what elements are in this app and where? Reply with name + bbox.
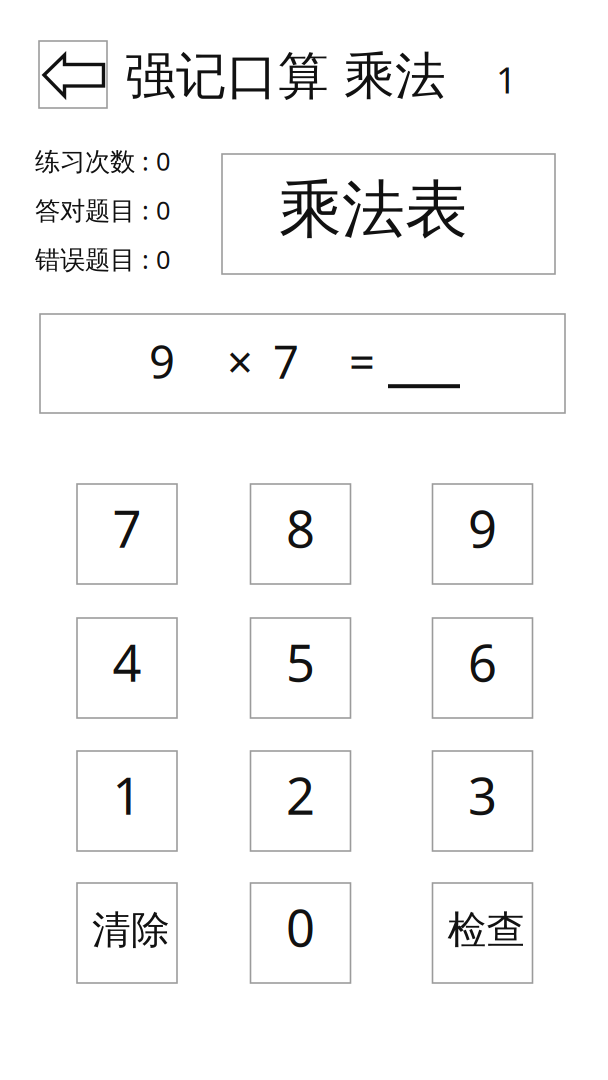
staticText: 7 bbox=[112, 494, 141, 562]
staticText: 答对题目 : 0 bbox=[35, 193, 170, 227]
button[interactable]: 8 bbox=[250, 484, 350, 584]
staticText: 3 bbox=[468, 761, 497, 829]
staticText: 9 bbox=[149, 331, 175, 391]
staticText: 9 bbox=[468, 494, 497, 562]
staticText: 5 bbox=[286, 628, 315, 696]
staticText: × bbox=[227, 331, 253, 391]
button[interactable]: 乘法表 bbox=[222, 154, 555, 274]
button[interactable]: 7 bbox=[77, 484, 177, 584]
button[interactable]: 1 bbox=[77, 751, 177, 851]
staticText: 错误题目 : 0 bbox=[35, 242, 170, 276]
staticText: 1 bbox=[496, 56, 517, 103]
staticText: 强记口算 乘法 bbox=[125, 45, 446, 108]
staticText: 0 bbox=[286, 893, 315, 961]
button[interactable]: 6 bbox=[432, 618, 532, 718]
staticText: 练习次数 : 0 bbox=[35, 144, 170, 178]
button[interactable]: 9 bbox=[432, 484, 532, 584]
button[interactable]: 3 bbox=[432, 751, 532, 851]
button[interactable]: 检查 bbox=[432, 883, 532, 983]
staticText: 6 bbox=[468, 628, 497, 696]
button[interactable]: 2 bbox=[250, 751, 350, 851]
staticText: 乘法表 bbox=[279, 171, 468, 248]
button[interactable]: 4 bbox=[77, 618, 177, 718]
button[interactable]: Back bbox=[39, 41, 107, 108]
button[interactable]: 0 bbox=[250, 883, 350, 983]
staticText: 清除 bbox=[92, 906, 170, 954]
staticText: 7 bbox=[273, 331, 299, 391]
staticText: 检查 bbox=[447, 906, 525, 954]
staticText: 1 bbox=[112, 761, 141, 829]
staticText: 4 bbox=[112, 628, 141, 696]
staticText: = bbox=[349, 331, 375, 391]
button[interactable]: 5 bbox=[250, 618, 350, 718]
staticText: 8 bbox=[286, 494, 315, 562]
staticText: 2 bbox=[286, 761, 315, 829]
button[interactable]: 清除 bbox=[77, 883, 177, 983]
